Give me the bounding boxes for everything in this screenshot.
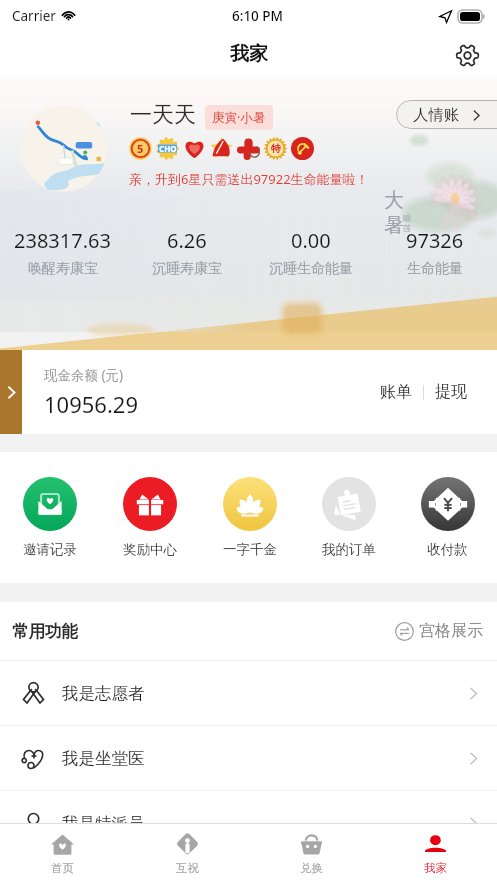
staticText: CHO <box>159 143 177 154</box>
staticText: 常用功能 <box>12 621 78 642</box>
button[interactable]: 奖励中心 <box>100 452 200 583</box>
button[interactable]: 邀请记录 <box>0 452 100 583</box>
button[interactable]: 一字千金 <box>200 452 299 583</box>
button[interactable]: 我是坐堂医 <box>0 726 497 790</box>
button[interactable]: Avatar <box>20 105 107 192</box>
button[interactable]: 首页 <box>0 824 125 883</box>
staticText: 238317.63 <box>14 227 111 254</box>
staticText: 互祝 <box>176 861 199 875</box>
staticText: 睡 <box>403 213 411 223</box>
button[interactable]: 我是志愿者 <box>0 661 497 725</box>
staticText: 莲 <box>403 223 411 233</box>
button[interactable]: 人情账 <box>396 100 497 129</box>
staticText: 账单 <box>380 382 412 402</box>
staticText: 人情账 <box>413 105 460 125</box>
staticText: 大 <box>384 188 404 213</box>
button[interactable]: 兑换 <box>249 824 373 883</box>
staticText: 6:10 PM <box>232 7 283 25</box>
button[interactable]: 账单 <box>369 372 423 412</box>
staticText: 一天天 <box>130 101 196 129</box>
staticText: 我家 <box>424 861 447 875</box>
staticText: 邀请记录 <box>23 541 77 558</box>
staticText: 生命能量 <box>407 260 463 278</box>
staticText: 现金余额 (元) <box>44 366 124 384</box>
staticText: 特 <box>271 142 281 155</box>
staticText: 我家 <box>230 42 268 66</box>
staticText: 6.26 <box>167 227 207 254</box>
staticText: 97326 <box>406 227 464 254</box>
staticText: 我是特派员 <box>62 813 145 834</box>
staticText: 兑换 <box>300 861 323 875</box>
staticText: 亲，升到6星只需送出97922生命能量啦！ <box>129 170 369 188</box>
staticText: 奖励中心 <box>123 541 177 558</box>
staticText: 收付款 <box>427 541 468 558</box>
button[interactable]: 提现 <box>424 372 478 412</box>
button[interactable]: 我是特派员 <box>0 791 497 855</box>
staticText: 0.00 <box>291 227 331 254</box>
staticText: 沉睡寿康宝 <box>152 260 222 278</box>
staticText: 我是坐堂医 <box>62 748 145 769</box>
staticText: 我的订单 <box>322 541 376 558</box>
staticText: 提现 <box>435 382 467 402</box>
staticText: 一字千金 <box>223 541 277 558</box>
button[interactable]: Settings <box>449 37 485 73</box>
button[interactable]: 我家 <box>373 824 497 883</box>
staticText: 5 <box>137 141 144 156</box>
staticText: Carrier <box>12 7 56 25</box>
staticText: 10956.29 <box>44 389 138 419</box>
button[interactable]: 收付款 <box>398 452 497 583</box>
button[interactable]: Expand balance <box>0 350 22 434</box>
staticText: 庚寅·小暑 <box>212 109 266 126</box>
staticText: 我是志愿者 <box>62 683 145 704</box>
staticText: 暑 <box>384 213 404 238</box>
button[interactable]: 我的订单 <box>299 452 398 583</box>
button[interactable]: 互祝 <box>125 824 249 883</box>
staticText: 沉睡生命能量 <box>269 260 353 278</box>
staticText: 唤醒寿康宝 <box>28 260 98 278</box>
button[interactable]: 宫格展示 <box>391 617 487 645</box>
staticText: 宫格展示 <box>419 621 483 641</box>
staticText: 首页 <box>51 861 74 875</box>
